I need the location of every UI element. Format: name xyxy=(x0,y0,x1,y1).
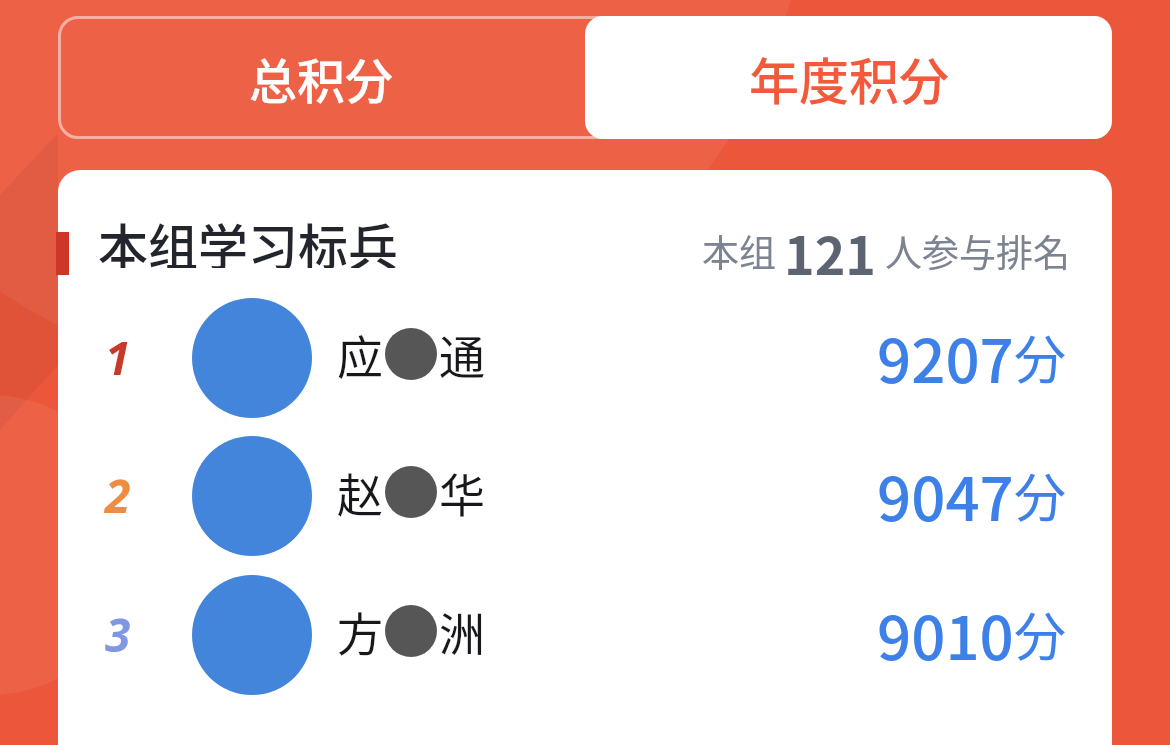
staticText: 应 xyxy=(337,321,383,388)
staticText: 1 xyxy=(105,326,131,389)
staticText: 人参与排名 xyxy=(885,224,1070,278)
staticText: 分 xyxy=(1014,457,1067,532)
staticText: 方 xyxy=(337,598,383,665)
staticText: 9047 xyxy=(877,451,1014,538)
staticText: 9207 xyxy=(877,313,1014,400)
staticText: 9010 xyxy=(877,590,1014,677)
staticText: 2 xyxy=(105,464,131,527)
staticText: 本组学习标兵 xyxy=(98,208,398,268)
staticText: 本组 xyxy=(702,224,776,278)
button[interactable]: 3 xyxy=(58,573,1112,697)
staticText: 年度积分 xyxy=(749,42,949,114)
staticText: 总积分 xyxy=(249,43,394,113)
staticText: 华 xyxy=(439,459,485,526)
button[interactable]: 1 xyxy=(58,296,1112,420)
staticText: 分 xyxy=(1014,596,1067,671)
staticText: 赵 xyxy=(337,459,383,526)
staticText: 3 xyxy=(105,603,131,666)
staticText: 121 xyxy=(784,215,877,275)
button[interactable]: 总积分 xyxy=(58,16,585,139)
button[interactable]: 2 xyxy=(58,434,1112,558)
staticText: 通 xyxy=(439,321,485,388)
staticText: 洲 xyxy=(439,598,485,665)
button[interactable]: 年度积分 xyxy=(585,16,1112,139)
staticText: 分 xyxy=(1014,319,1067,394)
